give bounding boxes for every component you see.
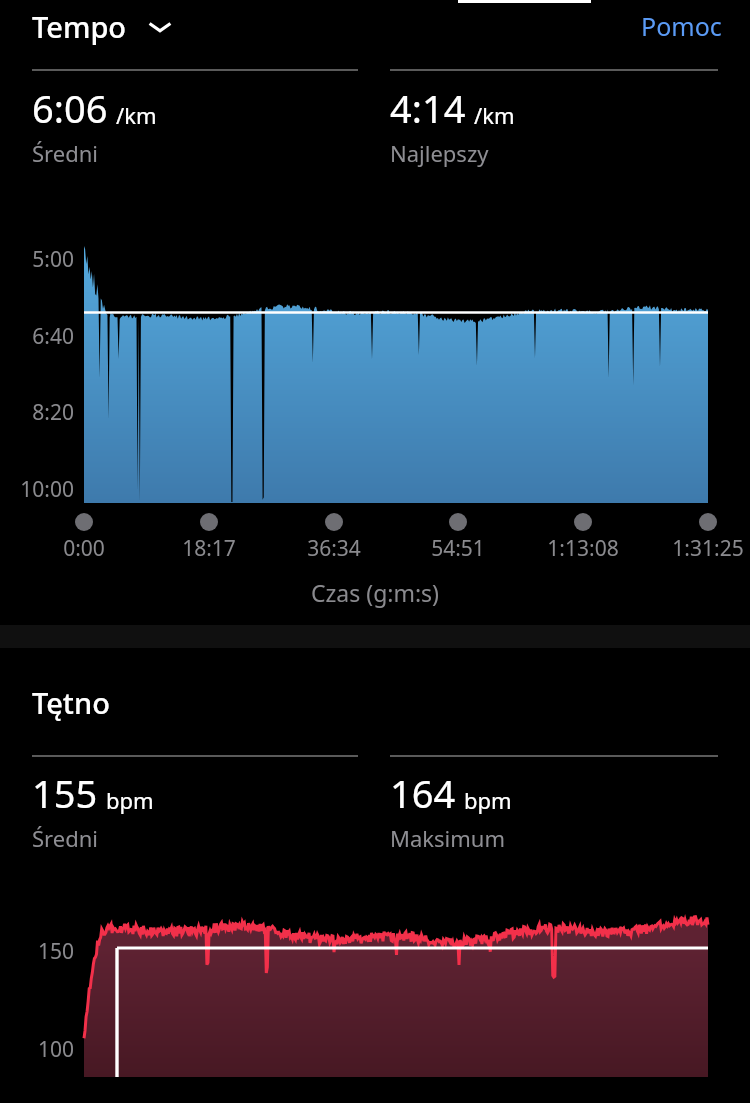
staticText: /km — [474, 100, 515, 130]
other: Expand — [147, 19, 173, 35]
staticText: Tętno — [32, 683, 110, 722]
button[interactable]: Tętno — [32, 683, 110, 722]
staticText: 164 — [390, 767, 456, 819]
button[interactable]: Tempo — [0, 7, 185, 46]
staticText: 1:31:25 — [648, 534, 750, 563]
staticText: 1:13:08 — [523, 534, 643, 563]
staticText: Maksimum — [390, 823, 505, 853]
staticText: 10:00 — [0, 475, 74, 504]
staticText: 150 — [0, 937, 74, 966]
staticText: 8:20 — [0, 398, 74, 427]
staticText: 18:17 — [149, 534, 269, 563]
staticText: Tempo — [32, 7, 127, 46]
staticText: bpm — [106, 785, 154, 815]
button[interactable]: Pomoc — [613, 3, 750, 49]
staticText: Średni — [32, 823, 98, 853]
staticText: 155 — [32, 767, 98, 819]
staticText: 54:51 — [398, 534, 518, 563]
staticText: bpm — [464, 785, 512, 815]
staticText: 100 — [0, 1035, 74, 1064]
staticText: Najlepszy — [390, 138, 489, 168]
staticText: 6:40 — [0, 322, 74, 351]
staticText: 0:00 — [24, 534, 144, 563]
staticText: 5:00 — [0, 245, 74, 274]
staticText: 36:34 — [274, 534, 394, 563]
staticText: 6:06 — [32, 82, 108, 134]
staticText: 4:14 — [390, 82, 466, 134]
staticText: Pomoc — [641, 9, 722, 43]
staticText: /km — [116, 100, 157, 130]
staticText: Czas (g:m:s) — [0, 577, 750, 608]
staticText: Średni — [32, 138, 98, 168]
